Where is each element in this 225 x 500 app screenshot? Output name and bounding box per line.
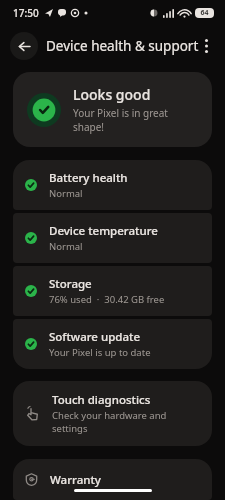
staticText: Normal xyxy=(49,187,83,200)
button[interactable]: Software update xyxy=(13,319,212,369)
staticText: 76% used · 30.42 GB free xyxy=(49,293,165,306)
button[interactable]: Storage xyxy=(13,266,212,316)
staticText: Device health & support xyxy=(46,37,199,55)
staticText: Your Pixel is in great shape! xyxy=(73,106,198,134)
button[interactable]: Back xyxy=(10,32,38,60)
button[interactable]: Warranty xyxy=(13,459,212,500)
staticText: Your Pixel is up to date xyxy=(49,346,151,359)
button[interactable]: More options xyxy=(191,31,221,61)
staticText: Looks good xyxy=(73,85,151,104)
staticText: Warranty xyxy=(50,472,101,487)
staticText: Touch diagnostics xyxy=(52,392,151,408)
staticText: Device temperature xyxy=(49,223,158,239)
staticText: Check your hardware and settings xyxy=(52,409,198,435)
button[interactable]: Device temperature xyxy=(13,213,212,263)
staticText: Normal xyxy=(49,240,83,253)
staticText: Battery health xyxy=(49,170,128,186)
staticText: Storage xyxy=(49,276,92,292)
staticText: 17:50 xyxy=(13,6,39,20)
staticText: Software update xyxy=(49,329,140,345)
button[interactable]: Battery health xyxy=(13,160,212,210)
button[interactable]: Touch diagnostics xyxy=(13,381,212,446)
staticText: 64 xyxy=(200,8,209,18)
button[interactable]: Looks good xyxy=(13,72,212,147)
